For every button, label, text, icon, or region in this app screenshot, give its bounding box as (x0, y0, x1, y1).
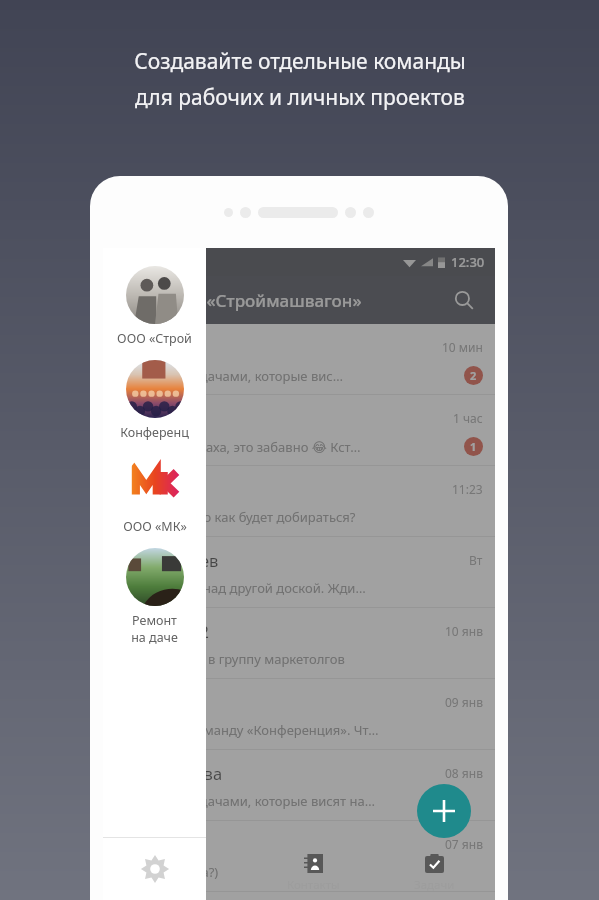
staticText: ООО «МК» (123, 518, 187, 535)
staticText: Конференц (120, 424, 189, 441)
staticText: а Иванова (109, 336, 442, 358)
staticText: 12:30 (451, 253, 485, 271)
staticText: 10 мин (442, 339, 483, 355)
staticText: Создавайте отдельные команды (134, 47, 466, 76)
staticText: Вт (469, 552, 483, 568)
button[interactable]: Конференц (103, 352, 206, 446)
button[interactable]: Задачи (374, 846, 495, 900)
staticText: олай Яковлев (109, 549, 469, 571)
button[interactable]: ООО «Строй (103, 258, 206, 352)
staticText: ривет, что с задачами, которые вис… (109, 367, 343, 385)
staticText: корпоратив (109, 478, 452, 500)
staticText: кетологи (109, 407, 453, 429)
staticText: етБот (109, 691, 445, 713)
staticText: 1 (470, 439, 477, 454)
button[interactable]: кетологи (103, 395, 495, 466)
button[interactable]: Ремонт на даче (103, 540, 206, 651)
staticText: т! Добавь меня в группу маркетолгов (109, 650, 345, 668)
staticText: Ремонт на даче (131, 612, 178, 646)
button[interactable]: а Ермилова (103, 821, 495, 892)
button[interactable]: а Иванова (103, 324, 495, 395)
staticText: для рабочих и личных проектов (135, 83, 465, 112)
staticText: Ахахаха, это забавно 😂 Кст… (178, 438, 361, 456)
button[interactable]: ООО «МК» (103, 446, 206, 540)
button[interactable]: корпоратив (103, 466, 495, 537)
staticText: мила Петрова (109, 762, 445, 784)
staticText: 08 янв (445, 765, 483, 781)
staticText: 07 янв (445, 836, 483, 852)
staticText: ООО «Строй (117, 330, 192, 347)
button[interactable]: мила Петрова (103, 750, 495, 821)
staticText: 99 169-68-32 (109, 620, 445, 642)
staticText: ригласили в команду «Конференция». Чт… (109, 721, 379, 739)
button[interactable]: олай Яковлев (103, 537, 495, 608)
staticText: 😂 Кто как будет добираться? (171, 508, 356, 526)
button[interactable]: Новый чат (417, 784, 471, 838)
button[interactable]: Настройки (103, 838, 206, 900)
staticText: 10 янв (445, 623, 483, 639)
staticText: где у нас Гриша?) (109, 863, 219, 881)
staticText: а Ермилова (109, 833, 445, 855)
staticText: О «Строймашвагон» (189, 289, 362, 312)
staticText: ривет, что с задачами, которые висят на… (109, 792, 375, 810)
button[interactable]: етБот (103, 679, 495, 750)
staticText: Иванова: (109, 508, 171, 526)
staticText: 09 янв (445, 694, 483, 710)
button[interactable]: 99 169-68-32 (103, 608, 495, 679)
staticText: 11:23 (452, 481, 483, 497)
staticText: й Сергеев: (109, 438, 178, 456)
staticText: 2 (470, 368, 477, 383)
button[interactable]: Поиск (447, 283, 481, 317)
button[interactable]: Контакты (253, 846, 374, 900)
staticText: с уже работаю над другой доской. Жди… (109, 579, 366, 597)
staticText: 1 час (453, 410, 483, 426)
